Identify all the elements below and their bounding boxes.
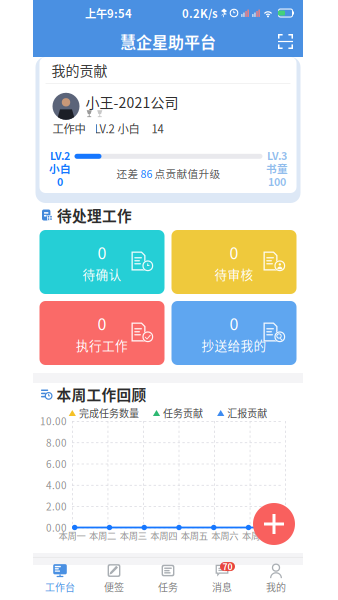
staticText: 0.00 <box>46 520 67 535</box>
staticText: 小白 <box>49 161 71 176</box>
staticText: 0.2K/s <box>182 5 218 21</box>
staticText: 我的 <box>266 580 286 594</box>
staticText: 0 <box>97 241 106 264</box>
button[interactable]: 工作台 <box>33 558 87 600</box>
staticText: 我的贡献 <box>51 60 107 80</box>
staticText: 6.00 <box>46 456 67 471</box>
button[interactable]: 0 <box>39 230 164 294</box>
staticText: 本周四 <box>150 529 177 542</box>
staticText: 书童 <box>266 161 288 176</box>
button[interactable]: 扫一扫 <box>274 30 297 53</box>
staticText: 慧企星助平台 <box>120 30 216 53</box>
staticText: LV.2 <box>50 148 70 163</box>
staticText: 4.00 <box>46 478 67 492</box>
staticText: 汇报贡献 <box>227 406 267 420</box>
staticText: 便签 <box>104 580 124 594</box>
staticText: 2.00 <box>46 499 67 513</box>
staticText: 本周六 <box>211 529 238 542</box>
staticText: 任务 <box>158 580 178 594</box>
staticText: 本周二 <box>89 529 116 542</box>
button[interactable]: 0 <box>171 230 296 294</box>
staticText: 70 <box>222 560 232 573</box>
staticText: 0 <box>229 241 238 264</box>
staticText: 0 <box>57 174 63 189</box>
staticText: 完成任务数量 <box>79 406 139 420</box>
staticText: 100 <box>268 174 286 189</box>
staticText: 执行工作 <box>76 336 128 354</box>
staticText: 8.00 <box>46 435 67 450</box>
staticText: 点贡献值升级 <box>152 166 220 181</box>
button[interactable]: 任务 <box>141 558 195 600</box>
staticText: 待审核 <box>214 265 253 283</box>
staticText: 本周日 <box>242 529 269 542</box>
staticText: 待处理工作 <box>57 204 132 226</box>
staticText: 本周五 <box>181 529 208 542</box>
staticText: 本周三 <box>120 529 147 542</box>
staticText: 任务贡献 <box>163 406 203 420</box>
staticText: 0 <box>97 312 106 335</box>
button[interactable]: 0 <box>171 301 296 365</box>
staticText: 抄送给我的 <box>201 336 266 354</box>
button[interactable]: 便签 <box>87 558 141 600</box>
staticText: 本周一 <box>58 529 85 542</box>
staticText: 0 <box>229 312 238 335</box>
button[interactable]: 我的 <box>249 558 303 600</box>
staticText: 86 <box>140 166 152 181</box>
staticText: LV.3 <box>267 148 287 163</box>
button[interactable]: 70 <box>195 558 249 600</box>
staticText: 消息 <box>212 580 232 594</box>
staticText: 工作台 <box>45 580 75 594</box>
staticText: 本周工作回顾 <box>56 383 146 405</box>
staticText: 待确认 <box>82 265 121 283</box>
button[interactable]: 新建 <box>253 503 295 545</box>
button[interactable]: 0 <box>39 301 164 365</box>
staticText: 还差 <box>116 166 140 181</box>
staticText: 10.00 <box>40 414 67 428</box>
staticText: 小王-2021公司 <box>85 92 178 112</box>
staticText: 上午9:54 <box>85 5 132 21</box>
staticText: 工作中 LV.2 小白 14 <box>52 120 163 136</box>
